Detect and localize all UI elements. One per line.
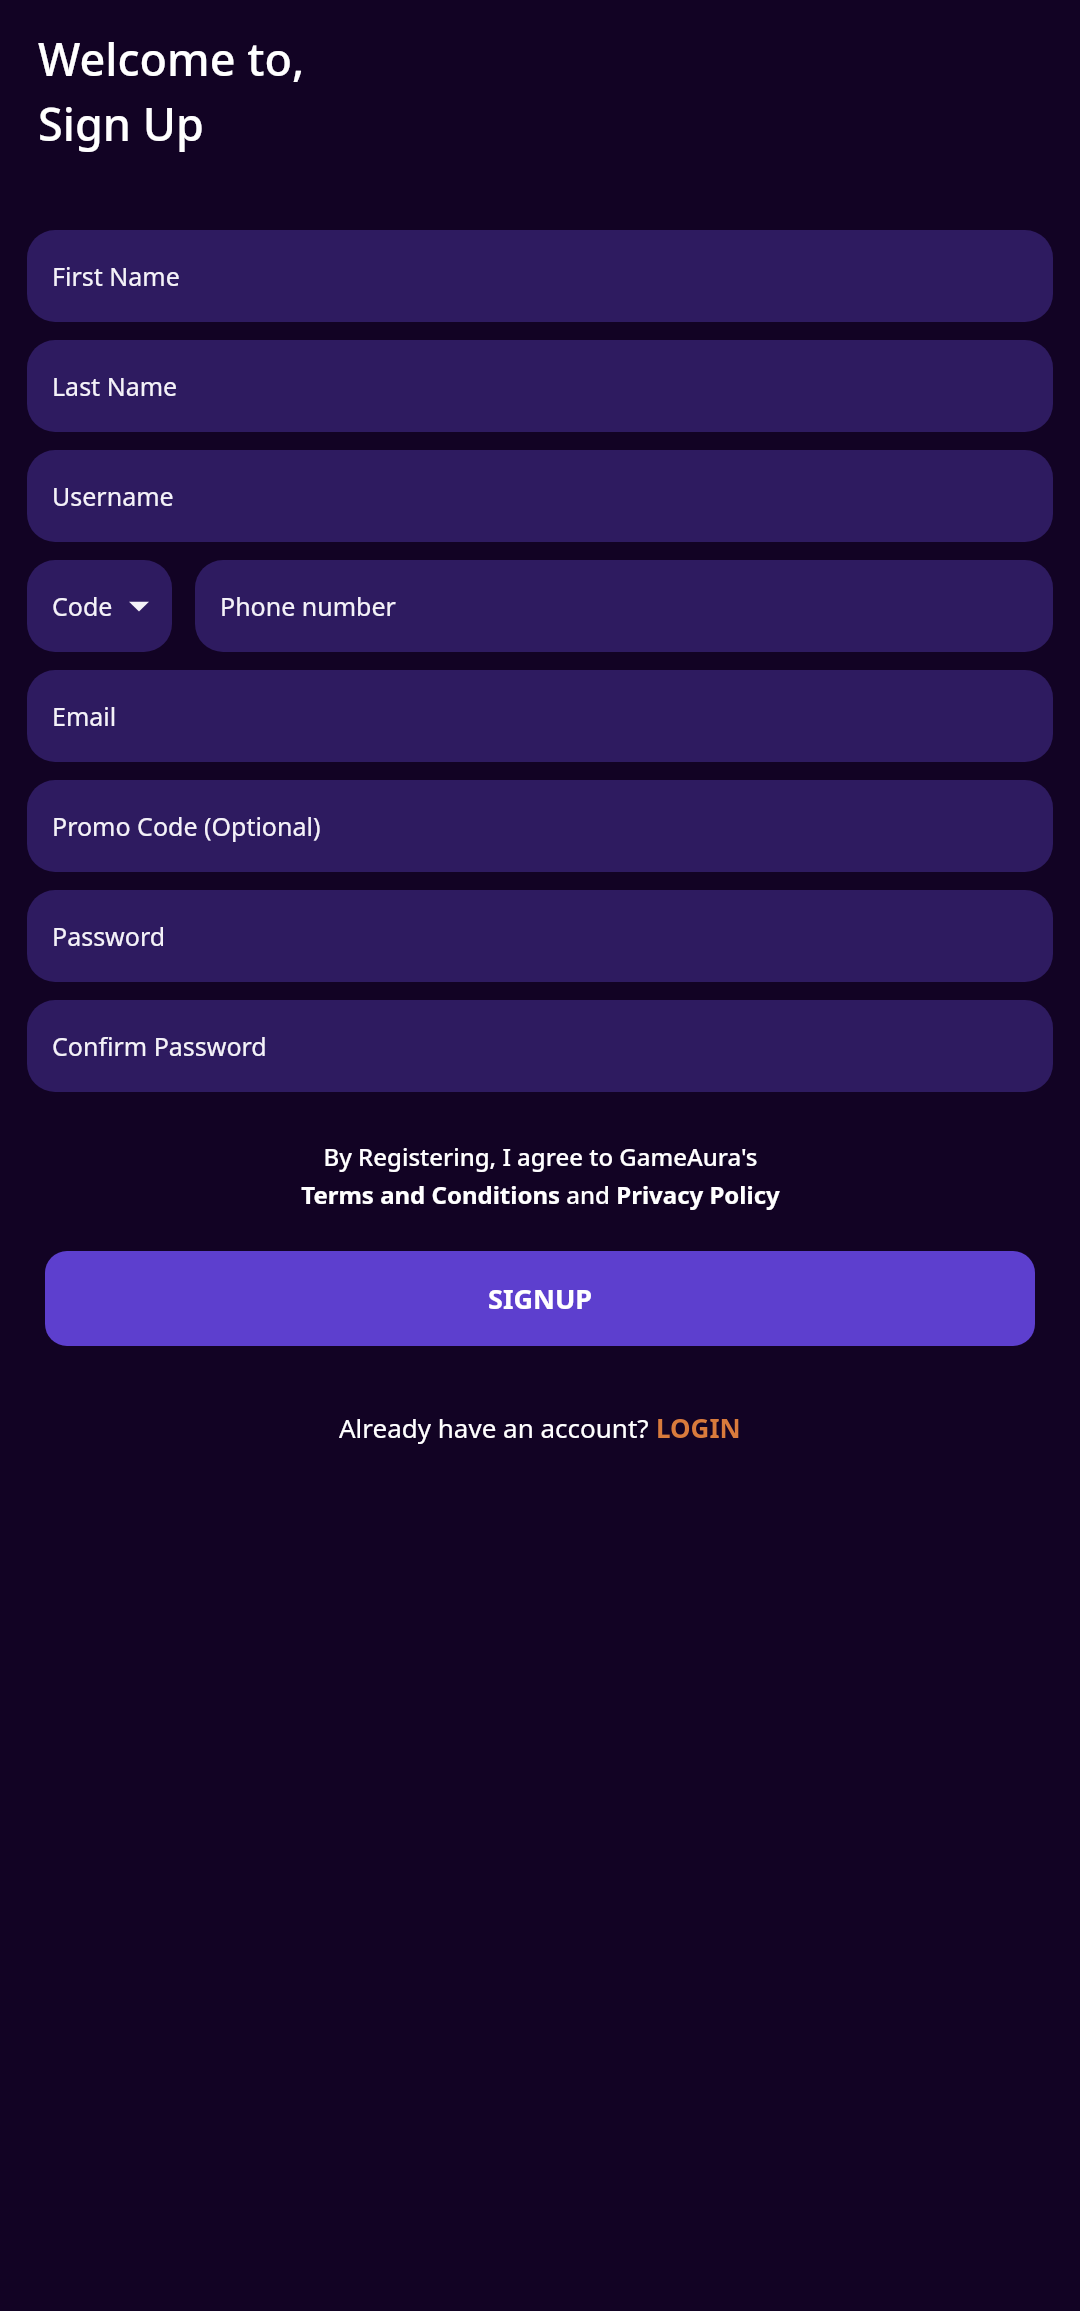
button[interactable]: Code (27, 560, 172, 652)
button[interactable]: LOGIN (656, 1410, 741, 1445)
staticText: Email (52, 699, 117, 733)
staticText: LOGIN (656, 1410, 741, 1445)
staticText: Promo Code (Optional) (52, 809, 321, 843)
staticText: By Registering, I agree to GameAura's Te… (301, 1140, 780, 1211)
button[interactable]: Phone number (195, 560, 1053, 652)
staticText: Welcome to, Sign Up (38, 28, 305, 154)
button[interactable]: Last Name (27, 340, 1053, 432)
button[interactable]: Promo Code (Optional) (27, 780, 1053, 872)
staticText: Code (52, 589, 113, 623)
button[interactable]: Password (27, 890, 1053, 982)
staticText: Already have an account? (339, 1410, 656, 1445)
staticText: Password (52, 919, 166, 953)
staticText: Confirm Password (52, 1029, 267, 1063)
button[interactable]: SIGNUP (45, 1251, 1035, 1346)
button[interactable]: Email (27, 670, 1053, 762)
staticText: SIGNUP (488, 1280, 593, 1317)
staticText: Last Name (52, 369, 178, 403)
staticText: Username (52, 479, 174, 513)
button[interactable]: By Registering, I agree to GameAura's Te… (27, 1140, 1053, 1211)
button[interactable]: Username (27, 450, 1053, 542)
staticText: First Name (52, 259, 180, 293)
staticText: Phone number (220, 589, 396, 623)
button[interactable]: First Name (27, 230, 1053, 322)
button[interactable]: Confirm Password (27, 1000, 1053, 1092)
